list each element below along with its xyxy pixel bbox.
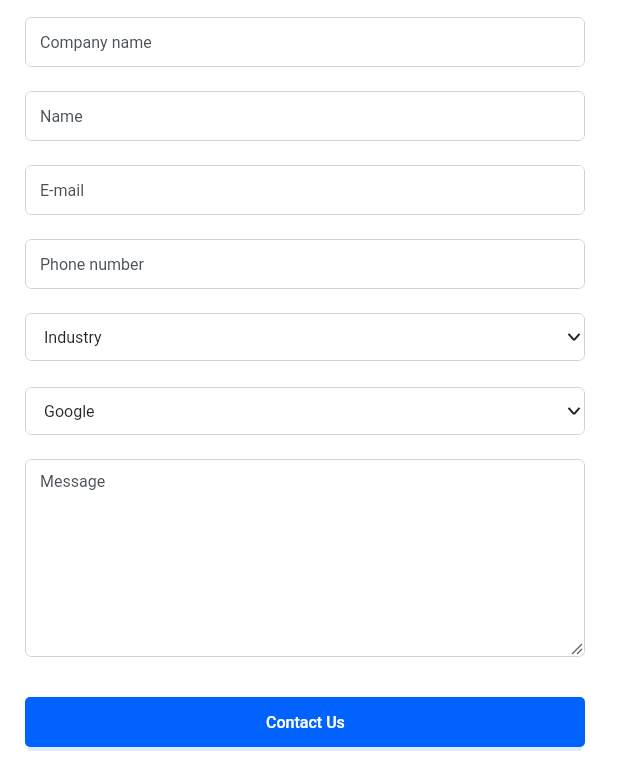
- button[interactable]: Message: [25, 459, 585, 657]
- button[interactable]: Industry: [25, 313, 585, 361]
- staticText: Google: [44, 402, 95, 421]
- button[interactable]: E-mail: [25, 165, 585, 215]
- button[interactable]: Contact Us: [25, 697, 585, 747]
- staticText: Company name: [40, 33, 152, 52]
- staticText: Contact Us: [266, 713, 345, 732]
- staticText: Name: [40, 107, 83, 126]
- staticText: Phone number: [40, 255, 144, 274]
- staticText: E-mail: [40, 181, 85, 200]
- button[interactable]: Phone number: [25, 239, 585, 289]
- button[interactable]: Company name: [25, 17, 585, 67]
- staticText: Message: [40, 472, 106, 491]
- button[interactable]: Name: [25, 91, 585, 141]
- staticText: Industry: [44, 328, 102, 347]
- button[interactable]: Google: [25, 387, 585, 435]
